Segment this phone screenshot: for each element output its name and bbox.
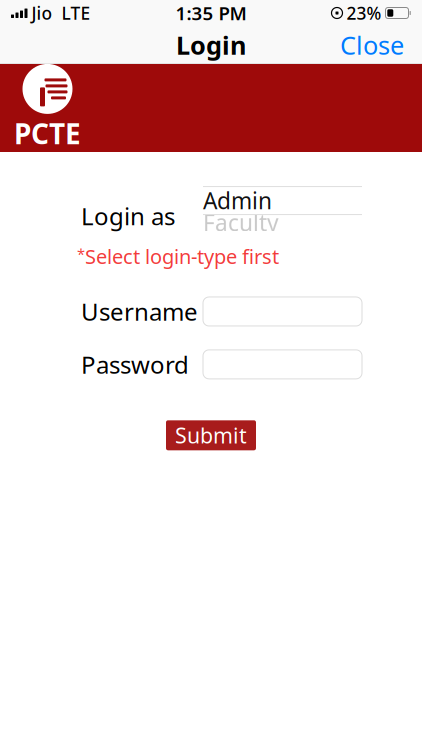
staticText: Username [81, 296, 198, 327]
staticText: Close [340, 28, 404, 62]
staticText: LTE [61, 1, 90, 24]
button[interactable]: Username [203, 297, 362, 326]
staticText: Select login-type first [85, 243, 279, 270]
staticText: 1:35 PM [175, 1, 246, 25]
staticText: Admin [203, 185, 272, 216]
staticText: Login as [81, 200, 175, 232]
staticText: Jio [31, 1, 52, 24]
button[interactable]: Submit [166, 420, 256, 450]
staticText: 23% [346, 1, 381, 24]
button[interactable]: Password [203, 350, 362, 379]
staticText: PCTE [14, 115, 81, 152]
staticText: Login [176, 28, 246, 62]
staticText: * [77, 244, 85, 263]
button[interactable]: Login type picker, Admin [203, 186, 362, 230]
staticText: Password [81, 348, 189, 380]
staticText: Faculty [203, 207, 279, 238]
button[interactable]: Close [328, 20, 416, 70]
staticText: Submit [175, 421, 247, 449]
